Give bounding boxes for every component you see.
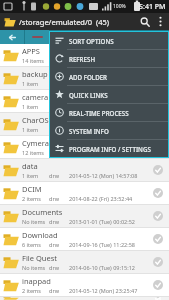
staticText: 6 items xyxy=(22,241,49,248)
staticText: ADD FOLDER xyxy=(69,73,108,81)
button[interactable]: Cymera xyxy=(0,136,169,158)
staticText: 2014-08-22 (Fri) 23:52:44 xyxy=(69,195,133,202)
staticText: 1 item xyxy=(22,126,49,133)
staticText: drw xyxy=(49,103,69,110)
button[interactable]: data xyxy=(0,159,169,181)
staticText: drw xyxy=(49,172,69,179)
staticText: Download xyxy=(22,230,58,240)
button[interactable] xyxy=(25,30,49,44)
button[interactable]: Documents xyxy=(0,205,169,227)
staticText: SORT OPTIONS xyxy=(69,37,114,45)
staticText: 1 item xyxy=(22,103,49,110)
staticText: No items xyxy=(22,218,49,225)
staticText: 2014-06-10 (Tue) 09:15:12 xyxy=(69,264,135,271)
staticText: 2014-09-16 (Tue) 11:20:41 xyxy=(69,57,135,64)
button[interactable]: Select data xyxy=(148,160,168,180)
button[interactable]: Select Documents xyxy=(148,206,168,226)
staticText: PROGRAM INFO / SETTINGS xyxy=(69,145,151,153)
button[interactable]: SYSTEM INFO xyxy=(50,122,168,139)
button[interactable]: backup xyxy=(0,67,169,89)
staticText: REAL-TIME PROCESS xyxy=(69,109,129,117)
staticText: 2014-05-12 (Mon) 14:57:08 xyxy=(69,172,138,179)
staticText: drw xyxy=(49,149,69,156)
button[interactable]: Select inappad xyxy=(148,275,168,295)
button[interactable]: Select CharOS xyxy=(148,114,168,134)
button[interactable]: File Quest xyxy=(0,251,169,273)
button[interactable]: Select File Quest xyxy=(148,252,168,272)
button[interactable]: REAL-TIME PROCESS xyxy=(50,104,168,121)
staticText: drw xyxy=(49,80,69,87)
staticText: SYSTEM INFO xyxy=(69,127,109,135)
button[interactable]: Select backup xyxy=(148,68,168,88)
staticText: Cymera xyxy=(22,138,49,148)
staticText: 2014-08-01 (Fri) 14:02:55 xyxy=(69,149,133,156)
button[interactable]: kbatterydoctor xyxy=(0,297,169,300)
staticText: 1 item xyxy=(22,80,49,87)
button[interactable]: Select APPS xyxy=(148,45,168,65)
button[interactable]: CharOS xyxy=(0,113,169,135)
button[interactable]: Select Download xyxy=(148,229,168,249)
staticText: 100% xyxy=(113,3,126,10)
staticText: 1 item xyxy=(22,172,49,179)
button[interactable]: More options xyxy=(153,13,167,30)
staticText: drw xyxy=(49,126,69,133)
staticText: drw xyxy=(49,241,69,248)
staticText: 2014-05-12 (Mon) 23:25:47 xyxy=(69,287,138,294)
staticText: 12 items xyxy=(22,149,49,156)
button[interactable]: QUICK LINKS xyxy=(50,86,168,103)
staticText: drw xyxy=(49,264,69,271)
staticText: camera xyxy=(22,92,49,102)
staticText: REFRESH xyxy=(69,55,96,63)
staticText: CharOS xyxy=(22,115,49,125)
staticText: 14 items xyxy=(22,57,49,64)
button[interactable]: camera xyxy=(0,90,169,112)
button[interactable]: Back xyxy=(0,30,24,44)
button[interactable]: Download xyxy=(0,228,169,250)
staticText: 2014-04-18 (Fri) 22:40:30 xyxy=(69,126,133,133)
staticText: File Quest xyxy=(22,253,57,263)
staticText: data xyxy=(22,161,38,171)
staticText: drw xyxy=(49,218,69,225)
staticText: 2014-06-03 (Tue) 09:11:02 xyxy=(69,103,135,110)
staticText: drw xyxy=(49,57,69,64)
button[interactable]: SORT OPTIONS xyxy=(50,32,168,49)
button[interactable]: REFRESH xyxy=(50,50,168,67)
staticText: No items xyxy=(22,264,49,271)
staticText: /storage/emulated/0 (45) xyxy=(19,17,136,27)
staticText: backup xyxy=(22,69,48,79)
staticText: 2 items xyxy=(22,287,49,294)
staticText: DCIM xyxy=(22,184,42,194)
button[interactable]: Select DCIM xyxy=(148,183,168,203)
button[interactable]: APPS xyxy=(0,44,169,66)
staticText: APPS xyxy=(22,46,40,56)
button[interactable]: Select Cymera xyxy=(148,137,168,157)
staticText: 2013-01-01 (Tue) 00:02:52 xyxy=(69,218,135,225)
staticText: 2 items xyxy=(22,195,49,202)
staticText: inappad xyxy=(22,276,51,286)
button[interactable]: inappad xyxy=(0,274,169,296)
button[interactable]: PROGRAM INFO / SETTINGS xyxy=(50,140,168,157)
staticText: drw xyxy=(49,195,69,202)
staticText: Documents xyxy=(22,207,63,217)
staticText: drw xyxy=(49,287,69,294)
button[interactable]: DCIM xyxy=(0,182,169,204)
button[interactable]: Select kbatterydoctor xyxy=(148,297,168,300)
staticText: QUICK LINKS xyxy=(69,91,108,99)
staticText: 5:41 PM xyxy=(139,2,166,12)
button[interactable]: ADD FOLDER xyxy=(50,68,168,85)
staticText: 2014-09-16 (Tue) 11:22:58 xyxy=(69,241,135,248)
staticText: 2014-05-12 (Mon) 18:02:11 xyxy=(69,80,138,87)
button[interactable]: Search xyxy=(136,13,153,30)
button[interactable]: Select camera xyxy=(148,91,168,111)
